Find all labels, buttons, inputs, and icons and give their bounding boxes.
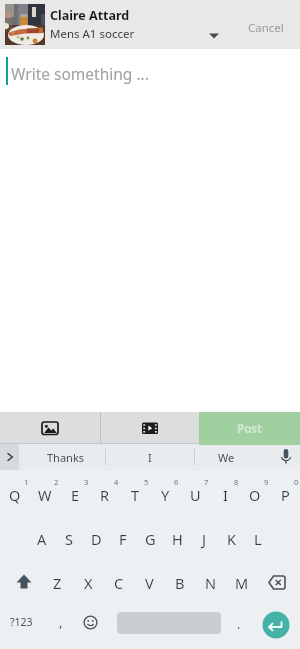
staticText: W: [38, 485, 52, 505]
staticText: 2: [54, 477, 59, 487]
button[interactable]: [208, 32, 220, 40]
button[interactable]: C: [104, 562, 134, 603]
button[interactable]: U: [180, 474, 210, 515]
button[interactable]: J: [190, 518, 218, 559]
staticText: ?123: [10, 615, 33, 629]
staticText: S: [65, 529, 73, 549]
staticText: 7: [204, 477, 209, 487]
button[interactable]: Cancel: [226, 12, 300, 44]
button[interactable]: Y: [150, 474, 180, 515]
staticText: D: [91, 529, 102, 549]
staticText: Q: [9, 485, 21, 505]
button[interactable]: Thanks: [26, 441, 106, 473]
staticText: G: [145, 529, 156, 549]
button[interactable]: We: [186, 441, 266, 473]
staticText: 3: [84, 477, 89, 487]
button[interactable]: D: [82, 518, 110, 559]
button[interactable]: N: [196, 562, 226, 603]
button[interactable]: [261, 566, 293, 598]
staticText: I: [148, 450, 152, 465]
button[interactable]: T: [120, 474, 150, 515]
staticText: K: [227, 529, 236, 549]
staticText: M: [235, 573, 249, 593]
staticText: J: [202, 529, 206, 549]
button[interactable]: O: [240, 474, 270, 515]
button[interactable]: S: [55, 518, 83, 559]
staticText: Post: [237, 421, 263, 437]
button[interactable]: X: [73, 562, 103, 603]
staticText: T: [131, 485, 140, 505]
staticText: F: [119, 529, 127, 549]
button[interactable]: I: [210, 474, 240, 515]
staticText: ,: [59, 613, 63, 631]
button[interactable]: I: [110, 441, 190, 473]
staticText: O: [249, 485, 261, 505]
staticText: Write something ...: [11, 63, 149, 84]
staticText: U: [190, 485, 201, 505]
staticText: Claire Attard: [50, 7, 130, 24]
staticText: Y: [161, 485, 170, 505]
staticText: N: [205, 573, 217, 593]
staticText: I: [223, 485, 228, 505]
button[interactable]: [0, 444, 19, 470]
button[interactable]: L: [244, 518, 272, 559]
button[interactable]: K: [217, 518, 245, 559]
button[interactable]: F: [109, 518, 137, 559]
staticText: 4: [114, 477, 119, 487]
button[interactable]: [5, 4, 45, 45]
button[interactable]: H: [163, 518, 191, 559]
staticText: 0: [294, 477, 299, 487]
button[interactable]: B: [165, 562, 195, 603]
staticText: We: [218, 450, 235, 465]
button[interactable]: [0, 412, 100, 444]
button[interactable]: [101, 412, 199, 444]
button[interactable]: ?123: [0, 606, 61, 638]
staticText: 1: [24, 477, 29, 487]
button[interactable]: Post: [199, 412, 300, 445]
staticText: 6: [174, 477, 179, 487]
button[interactable]: G: [136, 518, 164, 559]
staticText: Cancel: [248, 20, 284, 36]
staticText: .: [237, 615, 241, 633]
button[interactable]: V: [134, 562, 164, 603]
staticText: Z: [53, 573, 62, 593]
staticText: L: [254, 529, 262, 549]
button[interactable]: E: [60, 474, 90, 515]
staticText: Thanks: [47, 450, 85, 465]
staticText: X: [84, 573, 93, 593]
button[interactable]: W: [30, 474, 60, 515]
staticText: A: [37, 529, 47, 549]
staticText: H: [172, 529, 183, 549]
button[interactable]: [76, 608, 104, 636]
button[interactable]: ,: [21, 606, 101, 638]
staticText: 8: [234, 477, 239, 487]
button[interactable]: Q: [0, 474, 30, 515]
button[interactable]: .: [199, 608, 279, 640]
staticText: B: [175, 573, 185, 593]
staticText: P: [281, 485, 290, 505]
button[interactable]: M: [227, 562, 257, 603]
button[interactable]: Z: [42, 562, 72, 603]
button[interactable]: A: [28, 518, 56, 559]
button[interactable]: [261, 610, 290, 639]
button[interactable]: R: [90, 474, 120, 515]
staticText: Mens A1 soccer: [50, 26, 135, 42]
staticText: C: [114, 573, 124, 593]
staticText: E: [71, 485, 80, 505]
staticText: V: [145, 573, 154, 593]
staticText: 9: [264, 477, 269, 487]
staticText: R: [100, 485, 110, 505]
button[interactable]: [279, 448, 293, 466]
staticText: 5: [144, 477, 149, 487]
button[interactable]: Mens A1 soccer: [50, 26, 200, 42]
button[interactable]: [8, 566, 40, 598]
button[interactable]: P: [270, 474, 300, 515]
